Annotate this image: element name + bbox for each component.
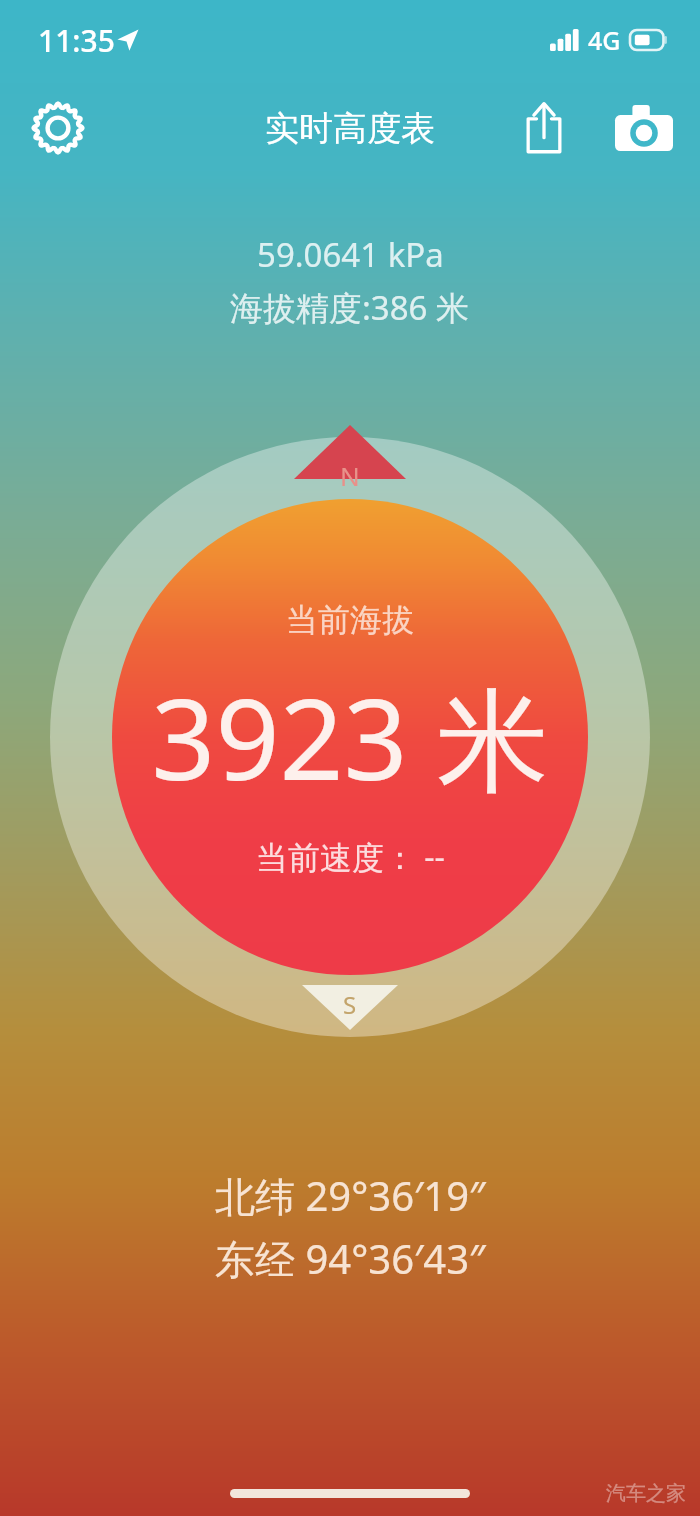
staticText: 4G	[588, 23, 621, 57]
button[interactable]: Settings	[20, 90, 96, 166]
staticText: 海拔精度:386 米	[230, 285, 470, 330]
staticText: 当前速度： --	[256, 835, 445, 879]
staticText: 东经 94°36′43″	[215, 1231, 486, 1286]
staticText: 当前海拔	[286, 600, 414, 640]
staticText: N	[340, 458, 360, 493]
staticText: S	[343, 988, 357, 1021]
staticText: 汽车之家	[606, 1481, 686, 1506]
staticText: 59.0641 kPa	[257, 232, 444, 277]
staticText: 实时高度表	[265, 107, 435, 150]
staticText: 11:35	[38, 20, 115, 61]
staticText: 3923 米	[151, 660, 549, 813]
staticText: 北纬 29°36′19″	[215, 1168, 486, 1223]
button[interactable]: Camera	[606, 90, 682, 166]
button[interactable]: Share	[506, 90, 582, 166]
